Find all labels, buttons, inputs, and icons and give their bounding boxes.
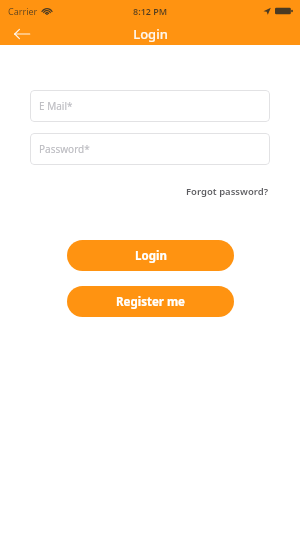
button[interactable]: Forgot password?: [184, 182, 271, 201]
button[interactable]: Back: [0, 22, 44, 45]
button[interactable]: Password*: [30, 133, 270, 165]
button[interactable]: Login: [67, 240, 234, 271]
staticText: Forgot password?: [186, 185, 269, 198]
staticText: Login: [133, 25, 168, 43]
button[interactable]: E Mail*: [30, 90, 270, 122]
staticText: E Mail*: [39, 99, 73, 113]
button[interactable]: Register me: [67, 286, 234, 317]
staticText: Register me: [116, 294, 185, 310]
staticText: Carrier: [8, 5, 38, 17]
staticText: Password*: [39, 142, 90, 156]
staticText: Login: [135, 248, 167, 264]
staticText: 8:12 PM: [133, 5, 168, 17]
